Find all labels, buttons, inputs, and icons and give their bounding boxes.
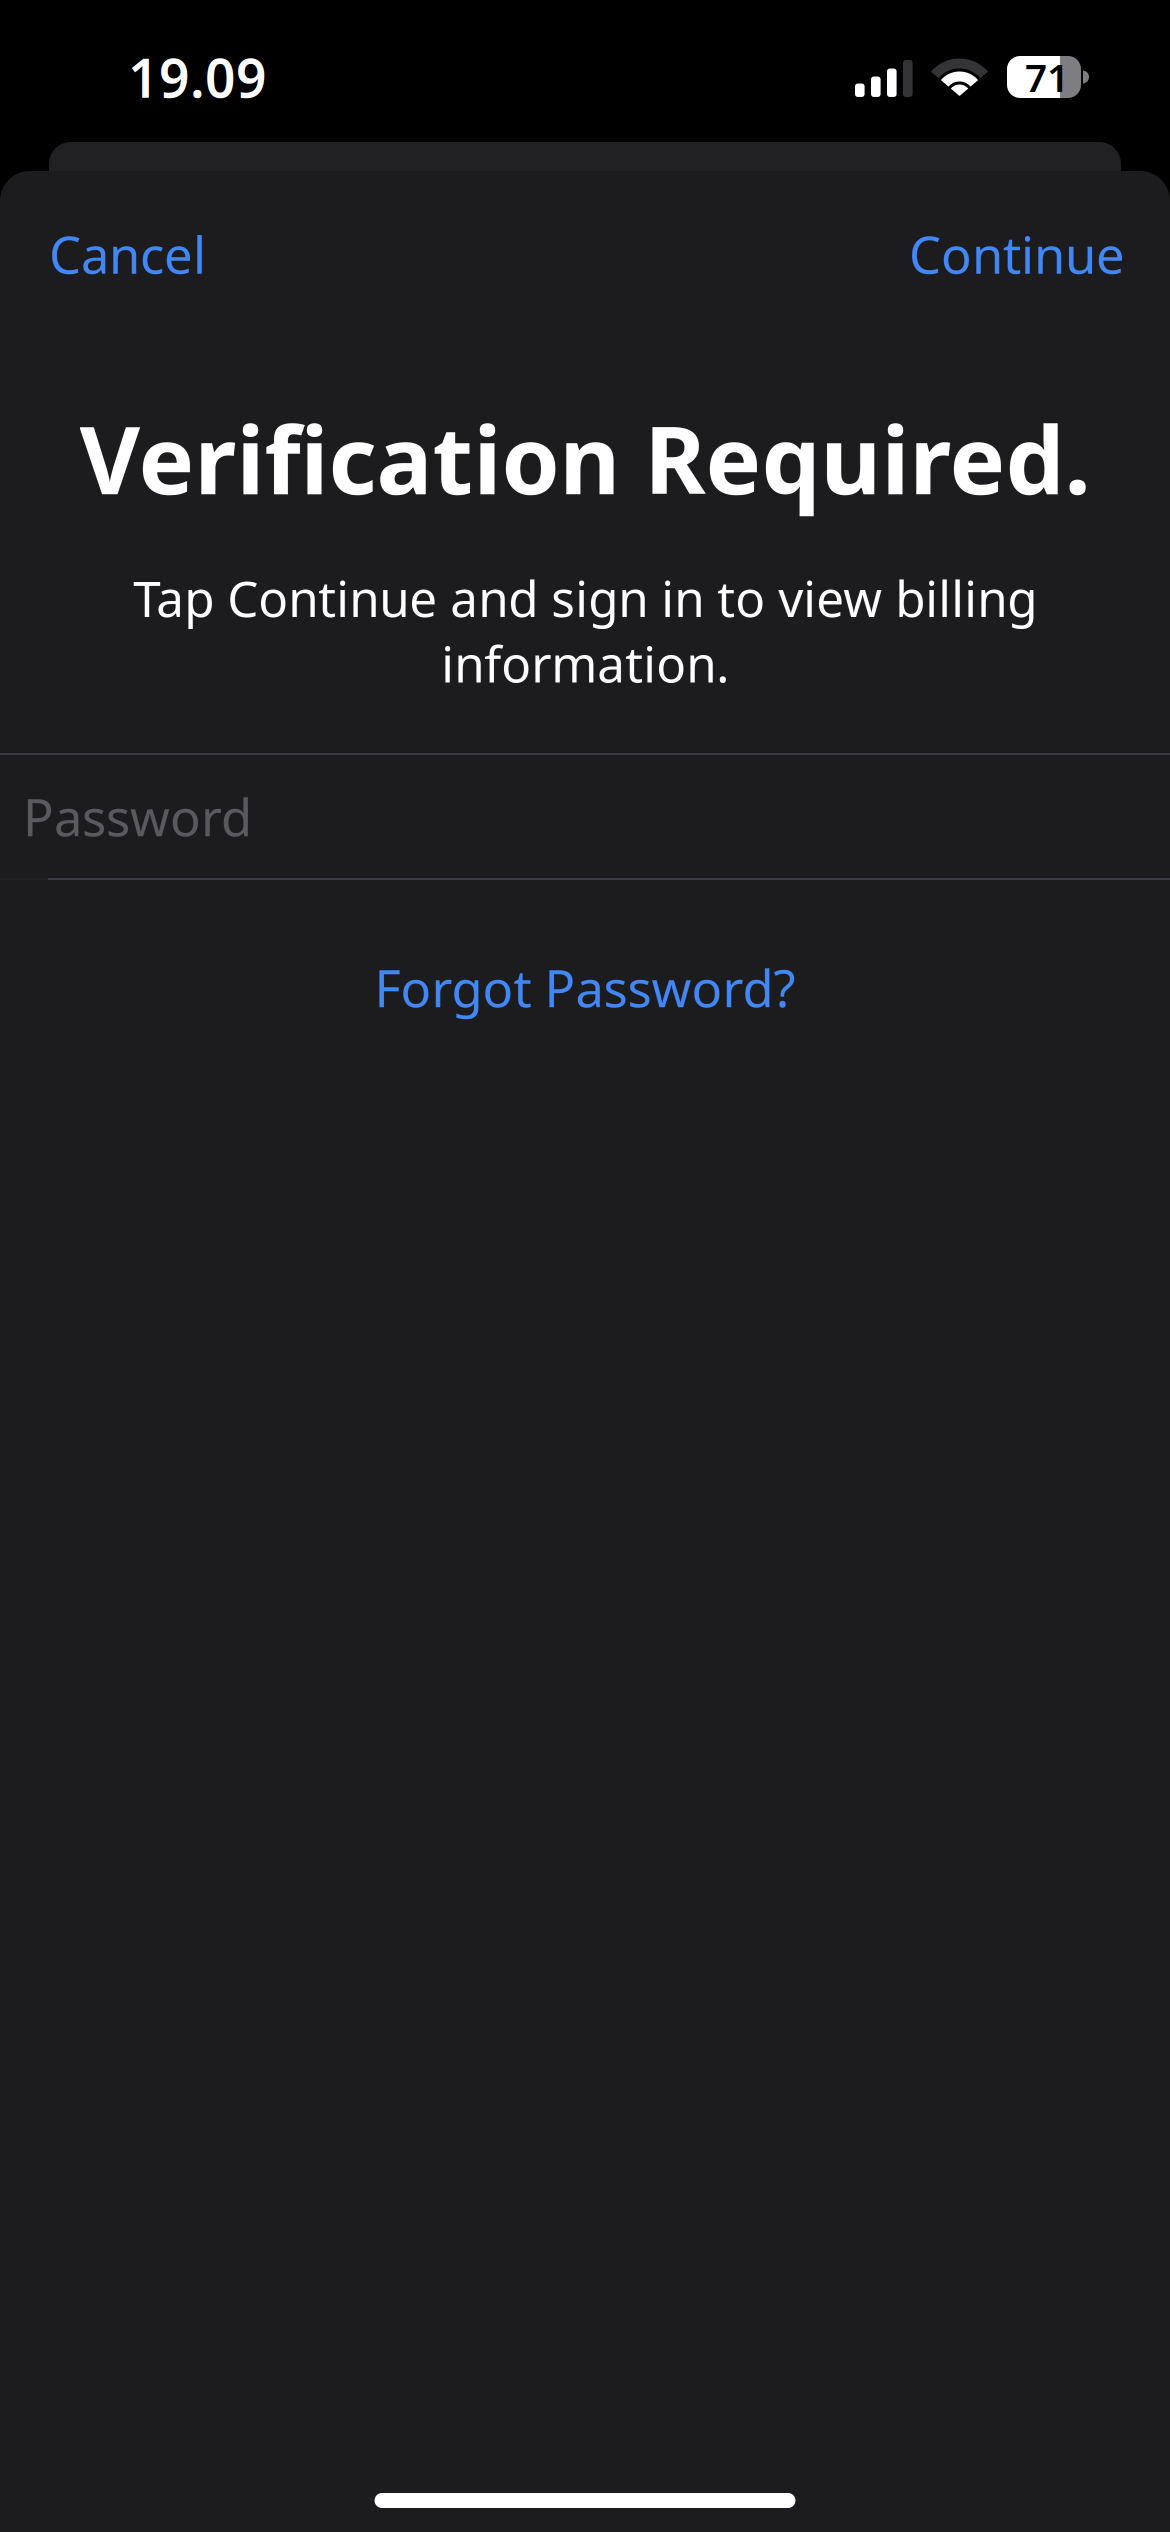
- staticText: Continue: [909, 220, 1125, 288]
- staticText: Cancel: [49, 220, 206, 288]
- staticText: Password: [23, 783, 252, 850]
- button[interactable]: Forgot Password?: [0, 954, 1170, 1021]
- button[interactable]: Continue: [849, 220, 1170, 288]
- button[interactable]: Password: [0, 755, 1170, 878]
- button[interactable]: Cancel: [0, 220, 266, 288]
- staticText: Forgot Password?: [374, 954, 795, 1021]
- staticText: 71: [1025, 51, 1069, 103]
- staticText: Tap Continue and sign in to view billing…: [133, 565, 1037, 696]
- staticText: Verification Required.: [79, 396, 1090, 520]
- staticText: 19.09: [128, 42, 267, 112]
